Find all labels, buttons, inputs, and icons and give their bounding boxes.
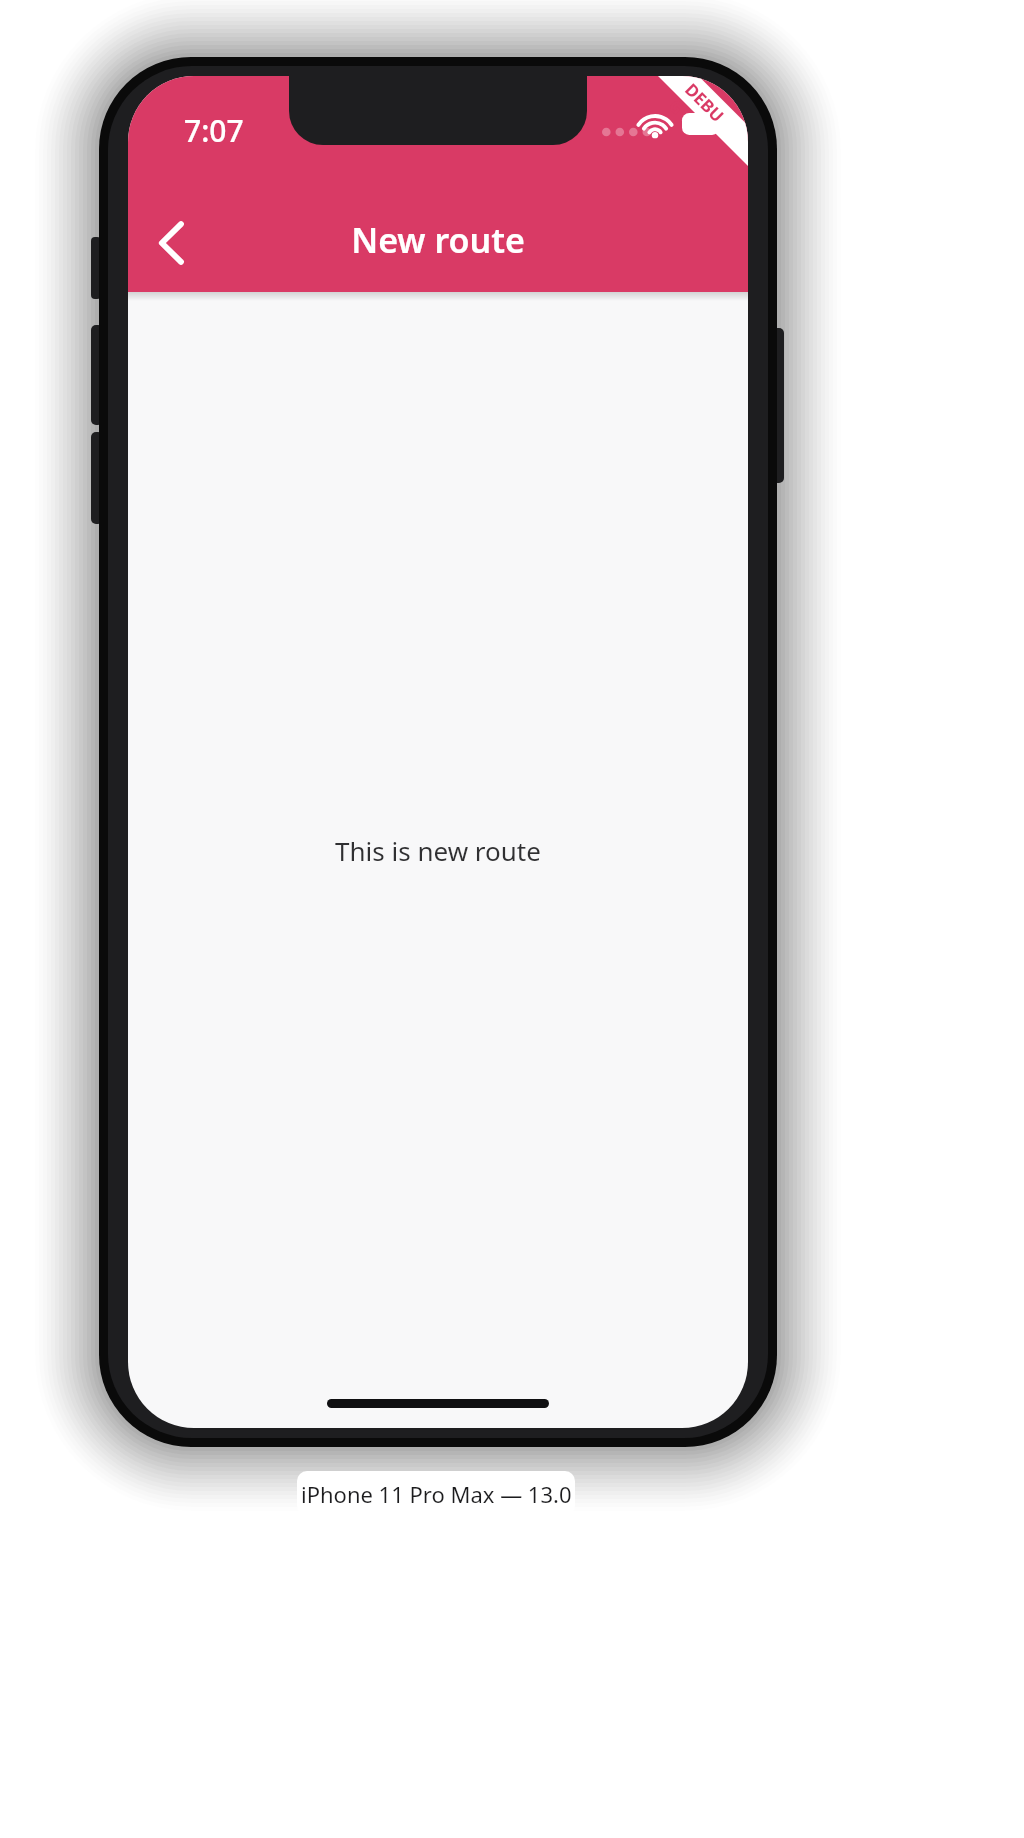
staticText: This is new route bbox=[128, 833, 748, 868]
staticText: iPhone 11 Pro Max — 13.0 bbox=[301, 1479, 572, 1509]
button[interactable]: Back bbox=[136, 207, 208, 279]
staticText: DEBUG bbox=[664, 78, 736, 150]
staticText: 7:07 bbox=[184, 110, 244, 151]
staticText: New route bbox=[128, 217, 748, 263]
